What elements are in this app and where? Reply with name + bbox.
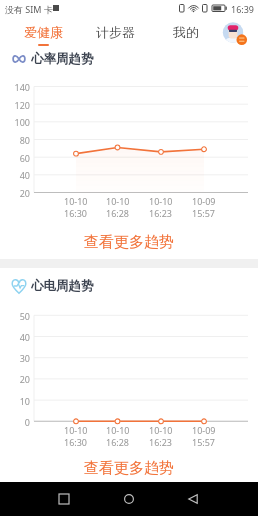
staticText: 20 bbox=[19, 373, 30, 385]
staticText: 10-09 bbox=[192, 195, 216, 207]
button[interactable]: 主页 bbox=[114, 484, 144, 514]
staticText: 16:39 bbox=[231, 3, 255, 15]
staticText: 15:57 bbox=[192, 436, 216, 448]
button[interactable]: 计步器 bbox=[86, 19, 144, 48]
button[interactable]: 心率周趋势 bbox=[0, 49, 258, 69]
staticText: 120 bbox=[14, 99, 30, 111]
staticText: 10-10 bbox=[149, 424, 173, 436]
staticText: 10-10 bbox=[106, 424, 130, 436]
staticText: 我的 bbox=[173, 24, 199, 40]
staticText: 爱健康 bbox=[24, 24, 63, 40]
staticText: 40 bbox=[19, 331, 30, 343]
staticText: 10-10 bbox=[149, 195, 173, 207]
staticText: 16:30 bbox=[64, 207, 88, 219]
button[interactable]: 查看更多趋势 bbox=[0, 457, 258, 479]
staticText: 10-10 bbox=[106, 195, 130, 207]
staticText: 10-10 bbox=[64, 195, 88, 207]
staticText: 16:23 bbox=[149, 207, 173, 219]
staticText: 查看更多趋势 bbox=[84, 233, 174, 252]
staticText: 15:57 bbox=[192, 207, 216, 219]
button[interactable]: 心电周趋势 bbox=[0, 276, 258, 296]
button[interactable]: 个人头像 bbox=[218, 18, 248, 47]
staticText: 心电周趋势 bbox=[31, 278, 94, 294]
staticText: 100 bbox=[14, 116, 30, 128]
staticText: 心率周趋势 bbox=[31, 51, 94, 67]
staticText: 16:28 bbox=[106, 207, 130, 219]
staticText: 60 bbox=[19, 152, 30, 164]
staticText: 80 bbox=[19, 134, 30, 146]
staticText: 16:23 bbox=[149, 436, 173, 448]
staticText: 50 bbox=[19, 310, 30, 322]
staticText: 140 bbox=[14, 81, 30, 93]
button[interactable]: 我的 bbox=[157, 19, 215, 48]
button[interactable]: 查看更多趋势 bbox=[0, 231, 258, 253]
staticText: 16:30 bbox=[64, 436, 88, 448]
staticText: 10 bbox=[19, 395, 30, 407]
button[interactable]: 返回 bbox=[178, 484, 208, 514]
button[interactable]: 爱健康 bbox=[14, 19, 72, 48]
staticText: 10-10 bbox=[64, 424, 88, 436]
button[interactable]: 最近任务 bbox=[49, 484, 79, 514]
staticText: 10-09 bbox=[192, 424, 216, 436]
staticText: 40 bbox=[19, 169, 30, 181]
staticText: 查看更多趋势 bbox=[84, 459, 174, 478]
staticText: 16:28 bbox=[106, 436, 130, 448]
staticText: 20 bbox=[19, 187, 30, 199]
staticText: 没有 SIM 卡 bbox=[5, 3, 53, 15]
staticText: 30 bbox=[19, 352, 30, 364]
staticText: 计步器 bbox=[96, 24, 135, 40]
staticText: 0 bbox=[24, 416, 30, 428]
